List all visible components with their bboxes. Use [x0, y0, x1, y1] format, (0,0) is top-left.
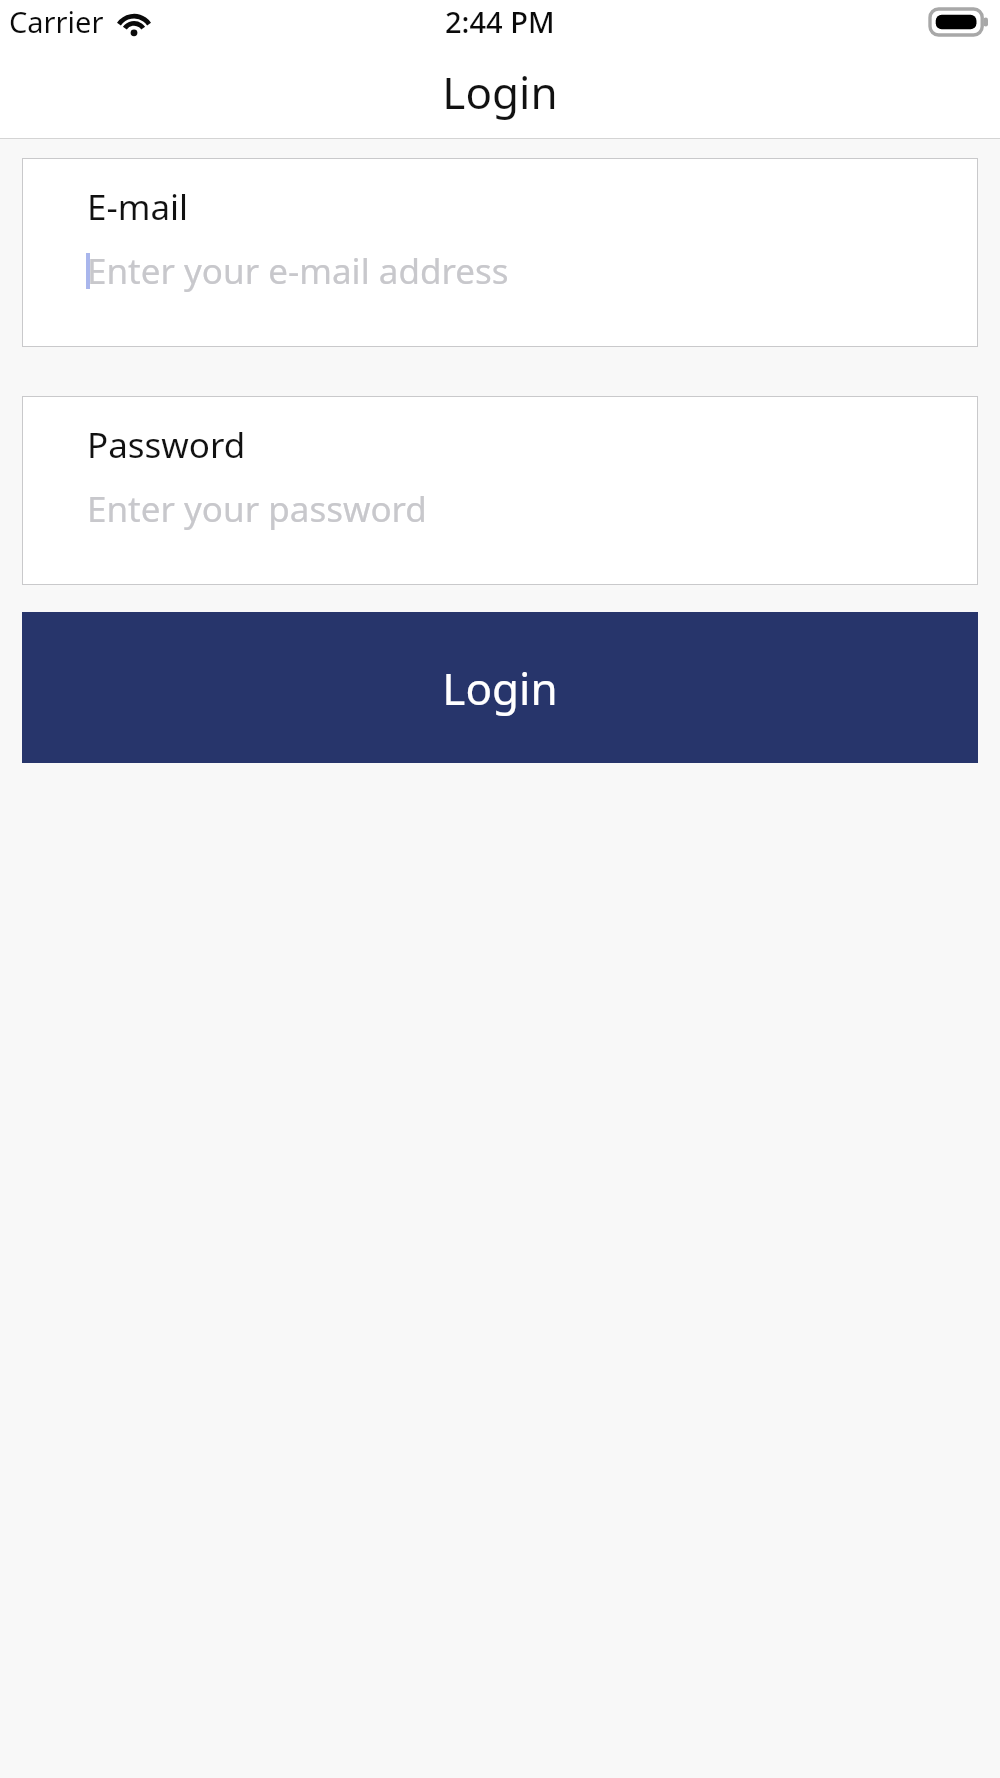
staticText: Enter your password: [87, 485, 427, 533]
staticText: Password: [87, 421, 246, 469]
staticText: Login: [442, 658, 558, 718]
button[interactable]: E-mail: [22, 158, 978, 347]
button[interactable]: Password: [22, 396, 978, 585]
staticText: Carrier: [9, 2, 104, 41]
staticText: 2:44 PM: [445, 2, 555, 41]
staticText: Login: [442, 62, 558, 122]
button[interactable]: Login: [22, 612, 978, 763]
staticText: Enter your e-mail address: [87, 247, 509, 295]
staticText: E-mail: [87, 183, 189, 231]
